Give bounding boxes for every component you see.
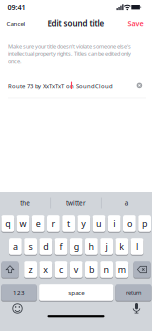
button[interactable]: q xyxy=(1,215,14,232)
staticText: Cancel xyxy=(6,19,25,27)
staticText: w xyxy=(19,218,26,229)
button[interactable]: x xyxy=(39,261,52,278)
staticText: i xyxy=(113,218,115,229)
button[interactable]: w xyxy=(17,215,29,232)
button[interactable]: j xyxy=(100,238,113,255)
staticText: q xyxy=(5,218,10,229)
button[interactable]: Dictation xyxy=(131,302,142,314)
button[interactable]: n xyxy=(100,261,113,278)
staticText: m xyxy=(118,264,126,275)
button[interactable]: z xyxy=(24,261,37,278)
button[interactable]: Emoji xyxy=(12,303,23,314)
staticText: e xyxy=(36,218,41,229)
button[interactable]: a xyxy=(122,197,132,209)
button[interactable]: o xyxy=(123,215,136,232)
staticText: r xyxy=(51,218,55,229)
button[interactable]: h xyxy=(85,238,98,255)
staticText: z xyxy=(29,264,33,275)
staticText: v xyxy=(74,264,79,275)
staticText: the xyxy=(20,199,30,207)
staticText: o xyxy=(127,218,132,229)
staticText: space xyxy=(68,288,84,296)
staticText: n xyxy=(104,264,110,275)
staticText: k xyxy=(119,241,124,252)
button[interactable]: b xyxy=(85,261,98,278)
staticText: c xyxy=(59,264,63,275)
button[interactable]: d xyxy=(39,238,52,255)
staticText: once. xyxy=(8,57,22,65)
staticText: s xyxy=(29,241,33,252)
button[interactable]: m xyxy=(115,261,128,278)
staticText: Edit sound title xyxy=(47,18,104,29)
staticText: Save xyxy=(127,19,143,28)
button[interactable]: 123 xyxy=(1,284,37,301)
button[interactable]: r xyxy=(47,215,60,232)
staticText: intellectual property rights. Titles can… xyxy=(8,50,131,57)
button[interactable]: s xyxy=(24,238,37,255)
button[interactable]: k xyxy=(115,238,128,255)
button[interactable]: f xyxy=(55,238,67,255)
button[interactable]: v xyxy=(70,261,83,278)
button[interactable]: Clear text xyxy=(135,81,143,89)
staticText: p xyxy=(142,218,147,229)
staticText: a xyxy=(125,199,129,207)
button[interactable]: space xyxy=(39,284,113,301)
staticText: y xyxy=(81,218,86,229)
button[interactable]: Save xyxy=(125,17,145,30)
button[interactable]: p xyxy=(138,215,151,232)
staticText: u xyxy=(96,218,102,229)
button[interactable]: y xyxy=(77,215,90,232)
staticText: 09:41 xyxy=(7,2,25,12)
staticText: 123 xyxy=(13,288,25,296)
staticText: l xyxy=(136,241,138,252)
staticText: d xyxy=(43,241,48,252)
staticText: x xyxy=(43,264,48,275)
staticText: h xyxy=(88,241,94,252)
button[interactable]: return xyxy=(115,284,151,301)
button[interactable]: t xyxy=(62,215,75,232)
button[interactable]: c xyxy=(55,261,67,278)
button[interactable]: Shift xyxy=(1,261,18,278)
button[interactable]: i xyxy=(108,215,121,232)
staticText: g xyxy=(74,241,79,252)
staticText: t xyxy=(67,218,70,229)
button[interactable]: a xyxy=(9,238,22,255)
staticText: j xyxy=(106,241,108,252)
staticText: twitter xyxy=(66,199,86,207)
button[interactable]: u xyxy=(93,215,105,232)
staticText: b xyxy=(89,264,94,275)
button[interactable]: Cancel xyxy=(4,17,27,29)
staticText: Route 73 by XxTxTxT on SoundCloud xyxy=(8,82,113,90)
button[interactable]: l xyxy=(131,238,143,255)
staticText: return xyxy=(126,289,141,296)
button[interactable]: twitter xyxy=(63,197,89,209)
staticText: f xyxy=(59,241,62,252)
staticText: a xyxy=(13,241,18,252)
button[interactable]: g xyxy=(70,238,83,255)
staticText: Make sure your title doesn't violate som… xyxy=(8,42,131,50)
button[interactable]: the xyxy=(17,197,33,209)
button[interactable]: Delete xyxy=(133,261,150,278)
button[interactable]: e xyxy=(32,215,45,232)
